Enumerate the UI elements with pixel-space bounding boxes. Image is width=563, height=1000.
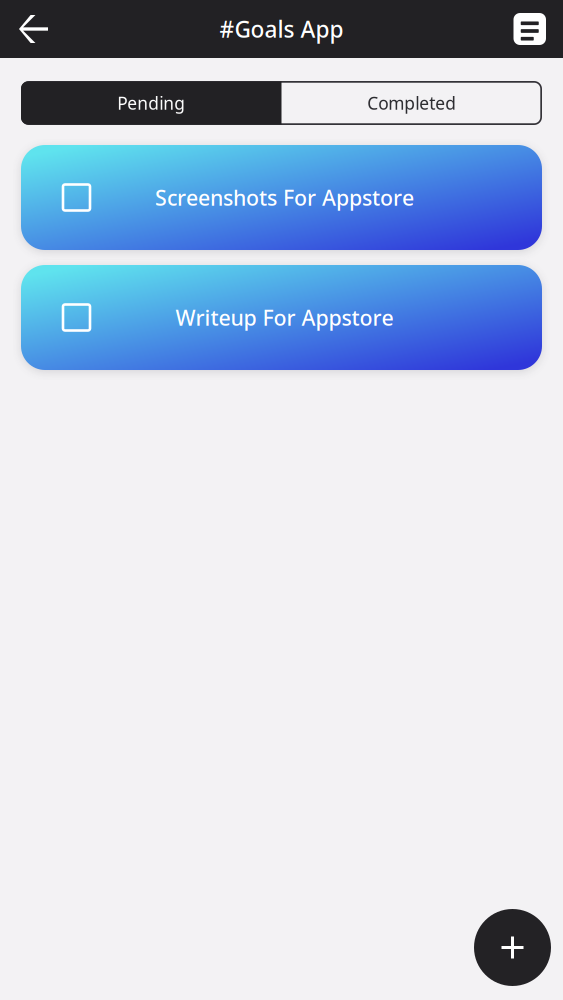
button[interactable]: Screenshots For Appstore xyxy=(21,145,542,250)
button[interactable]: Pending xyxy=(21,81,281,124)
button[interactable]: Menu xyxy=(499,0,563,58)
staticText: Screenshots For Appstore xyxy=(155,183,414,212)
button[interactable]: Add task xyxy=(474,909,551,986)
staticText: Pending xyxy=(117,91,185,114)
staticText: Writeup For Appstore xyxy=(175,303,393,332)
button[interactable]: Writeup For Appstore xyxy=(21,265,542,370)
staticText: Completed xyxy=(367,91,456,114)
button[interactable]: Back xyxy=(0,0,62,58)
staticText: #Goals App xyxy=(219,14,343,44)
button[interactable]: Completed xyxy=(281,81,542,124)
